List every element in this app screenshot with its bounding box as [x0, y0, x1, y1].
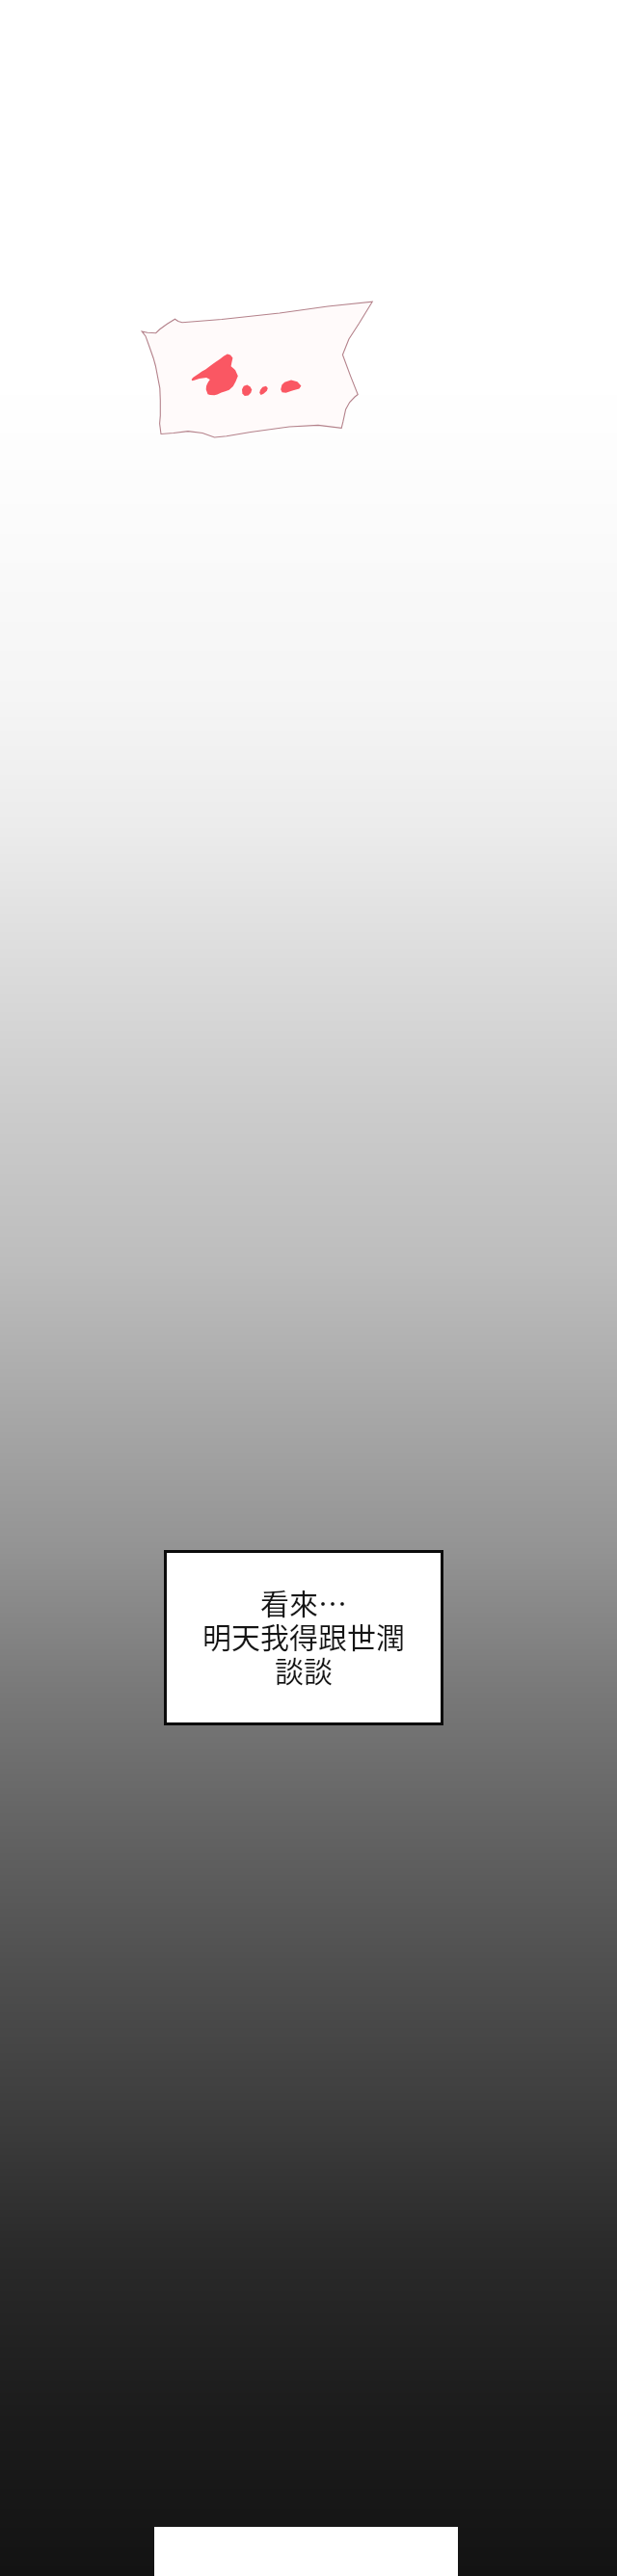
other: Torn note with red stain: [135, 289, 386, 453]
button[interactable]: 看來… 明天我得跟世潤 談談: [164, 1550, 443, 1725]
staticText: 看來… 明天我得跟世潤 談談: [202, 1581, 405, 1691]
